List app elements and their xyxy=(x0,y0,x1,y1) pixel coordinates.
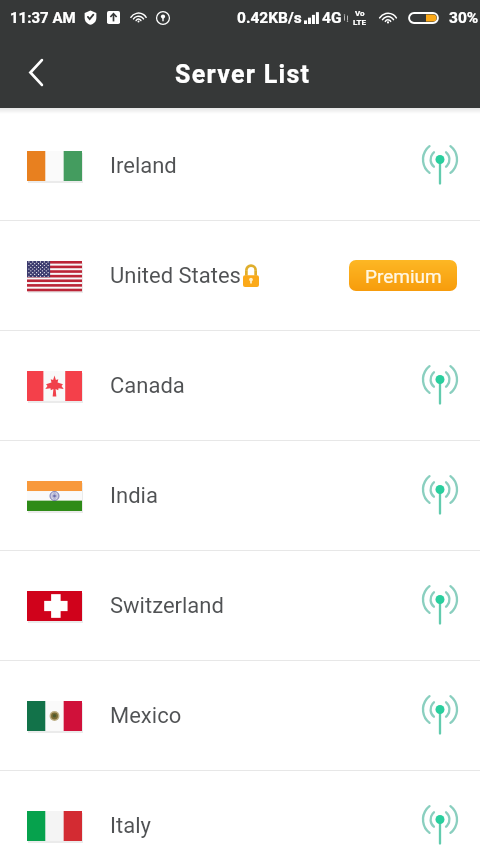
staticText: 30% xyxy=(449,9,479,27)
staticText: 4G xyxy=(322,9,342,27)
button[interactable]: Back xyxy=(16,52,56,92)
button[interactable]: Premium xyxy=(349,260,457,291)
staticText: Premium xyxy=(365,265,442,287)
button[interactable]: Italy xyxy=(0,771,480,853)
button[interactable]: United States xyxy=(0,221,480,330)
other: Connect to Mexico xyxy=(422,696,458,736)
button[interactable]: India xyxy=(0,441,480,550)
staticText: Server List xyxy=(175,60,311,89)
other: Connect to Ireland xyxy=(422,146,458,186)
staticText: Ireland xyxy=(110,153,177,179)
staticText: Vo xyxy=(355,9,365,18)
button[interactable]: Mexico xyxy=(0,661,480,770)
staticText: 11:37 AM xyxy=(10,9,76,27)
button[interactable]: Ireland xyxy=(0,111,480,220)
staticText: United States xyxy=(110,263,241,289)
other: Connect to India xyxy=(422,476,458,516)
other: Connect to Switzerland xyxy=(422,586,458,626)
staticText: India xyxy=(110,483,158,509)
other: Connect to Italy xyxy=(422,806,458,846)
staticText: Switzerland xyxy=(110,593,224,619)
other: Connect to Canada xyxy=(422,366,458,406)
staticText: Mexico xyxy=(110,703,182,729)
staticText: Italy xyxy=(110,813,151,839)
staticText: 0.42KB/s xyxy=(237,9,302,27)
button[interactable]: Canada xyxy=(0,331,480,440)
button[interactable]: Switzerland xyxy=(0,551,480,660)
staticText: Canada xyxy=(110,373,185,399)
staticText: LTE xyxy=(353,18,366,27)
